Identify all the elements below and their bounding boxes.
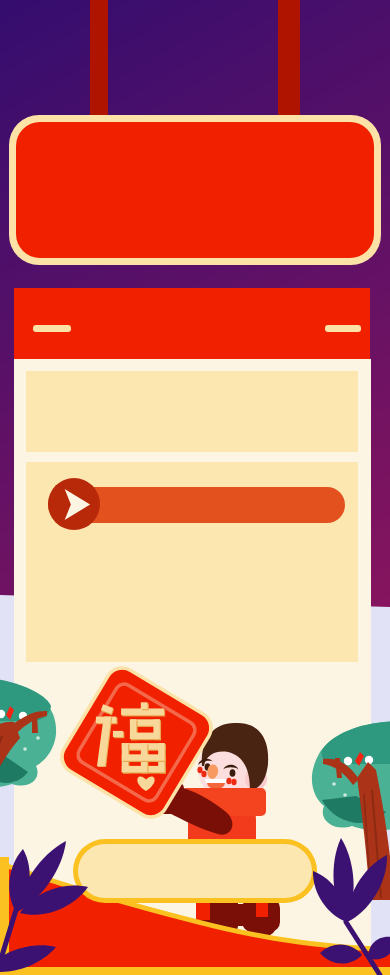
button[interactable]	[78, 844, 312, 898]
button[interactable]: Play	[48, 478, 100, 530]
button[interactable]	[16, 122, 374, 258]
button[interactable]	[33, 325, 71, 332]
button[interactable]: Play	[26, 462, 358, 662]
button[interactable]	[325, 325, 361, 332]
